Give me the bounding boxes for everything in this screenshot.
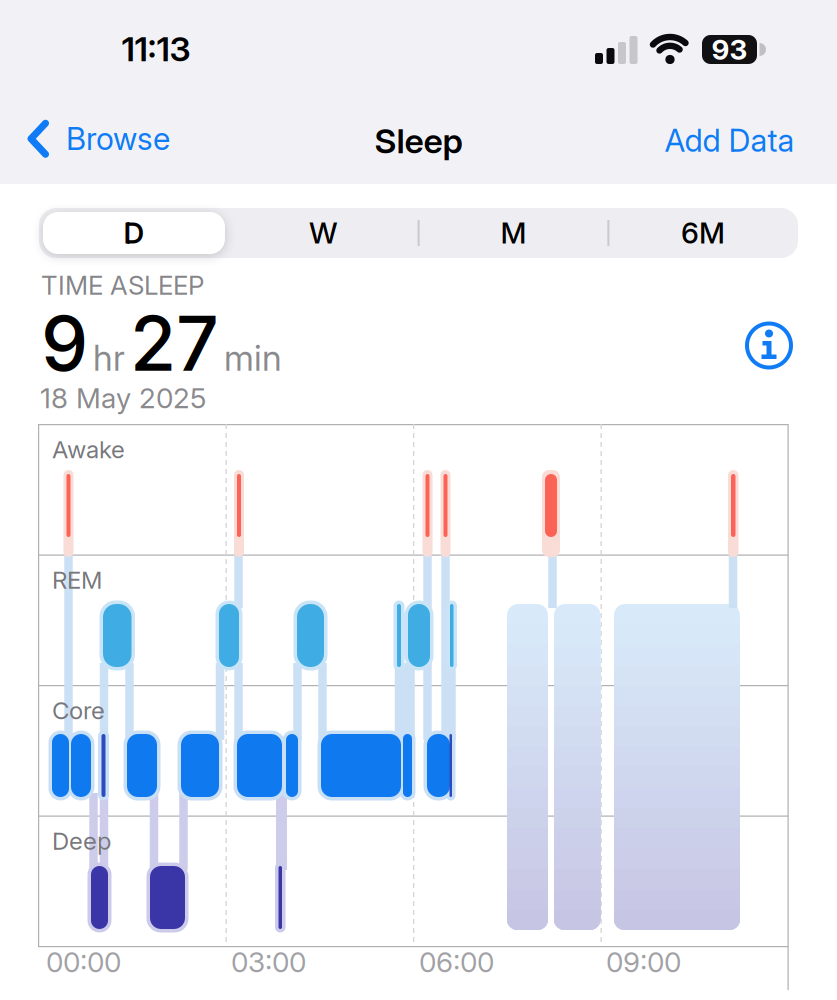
button[interactable]: W [233, 210, 413, 256]
staticText: Browse [66, 120, 170, 157]
staticText: W [309, 215, 338, 251]
staticText: min [224, 337, 282, 379]
staticText: 27 [130, 298, 219, 389]
staticText: 03:00 [231, 945, 306, 979]
staticText: 06:00 [419, 945, 494, 979]
staticText: Core [52, 696, 105, 725]
staticText: hr [93, 337, 125, 379]
button[interactable]: M [423, 210, 603, 256]
staticText: 09:00 [606, 945, 681, 979]
staticText: Add Data [664, 122, 794, 159]
staticText: 9 [41, 298, 88, 389]
staticText: 6M [681, 215, 725, 251]
staticText: M [500, 215, 526, 251]
button[interactable]: Browse [27, 120, 170, 157]
staticText: D [123, 215, 144, 251]
button[interactable]: More info [747, 323, 791, 367]
staticText: Sleep [374, 120, 462, 161]
staticText: 18 May 2025 [40, 381, 206, 415]
staticText: 00:00 [46, 945, 121, 979]
button[interactable]: D [43, 212, 225, 254]
button[interactable]: Add Data [664, 122, 794, 159]
staticText: REM [52, 565, 102, 594]
staticText: TIME ASLEEP [41, 269, 204, 301]
staticText: Awake [52, 435, 125, 464]
staticText: Deep [52, 826, 111, 855]
staticText: 93 [711, 33, 747, 66]
button[interactable]: 6M [613, 210, 793, 256]
staticText: 11:13 [121, 28, 190, 69]
